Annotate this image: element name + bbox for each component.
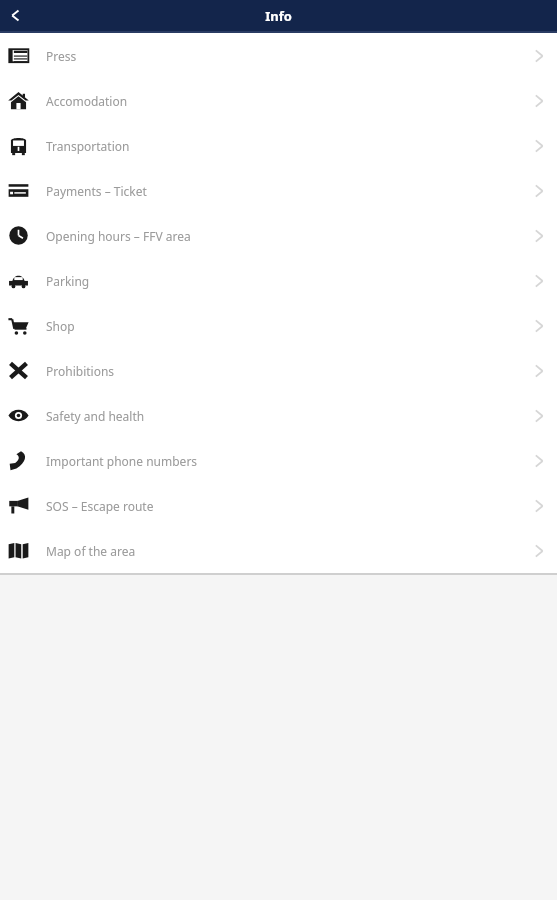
button[interactable]: Back xyxy=(0,0,30,31)
button[interactable]: Parking xyxy=(0,258,557,303)
button[interactable]: Opening hours – FFV area xyxy=(0,213,557,258)
button[interactable]: Transportation xyxy=(0,123,557,168)
button[interactable]: SOS – Escape route xyxy=(0,483,557,528)
staticText: Opening hours – FFV area xyxy=(46,228,191,244)
button[interactable]: Press xyxy=(0,33,557,78)
button[interactable]: Payments – Ticket xyxy=(0,168,557,213)
button[interactable]: Shop xyxy=(0,303,557,348)
staticText: Payments – Ticket xyxy=(46,183,147,199)
staticText: Parking xyxy=(46,273,90,289)
staticText: Safety and health xyxy=(46,408,145,424)
staticText: Accomodation xyxy=(46,93,128,109)
staticText: Press xyxy=(46,48,77,64)
button[interactable]: Safety and health xyxy=(0,393,557,438)
button[interactable]: Map of the area xyxy=(0,528,557,573)
staticText: Map of the area xyxy=(46,543,136,559)
staticText: Prohibitions xyxy=(46,363,115,379)
button[interactable]: Accomodation xyxy=(0,78,557,123)
button[interactable]: Important phone numbers xyxy=(0,438,557,483)
button[interactable]: Prohibitions xyxy=(0,348,557,393)
staticText: Important phone numbers xyxy=(46,453,198,469)
staticText: Info xyxy=(265,7,292,25)
staticText: SOS – Escape route xyxy=(46,498,154,514)
staticText: Shop xyxy=(46,318,75,334)
staticText: Transportation xyxy=(46,138,130,154)
